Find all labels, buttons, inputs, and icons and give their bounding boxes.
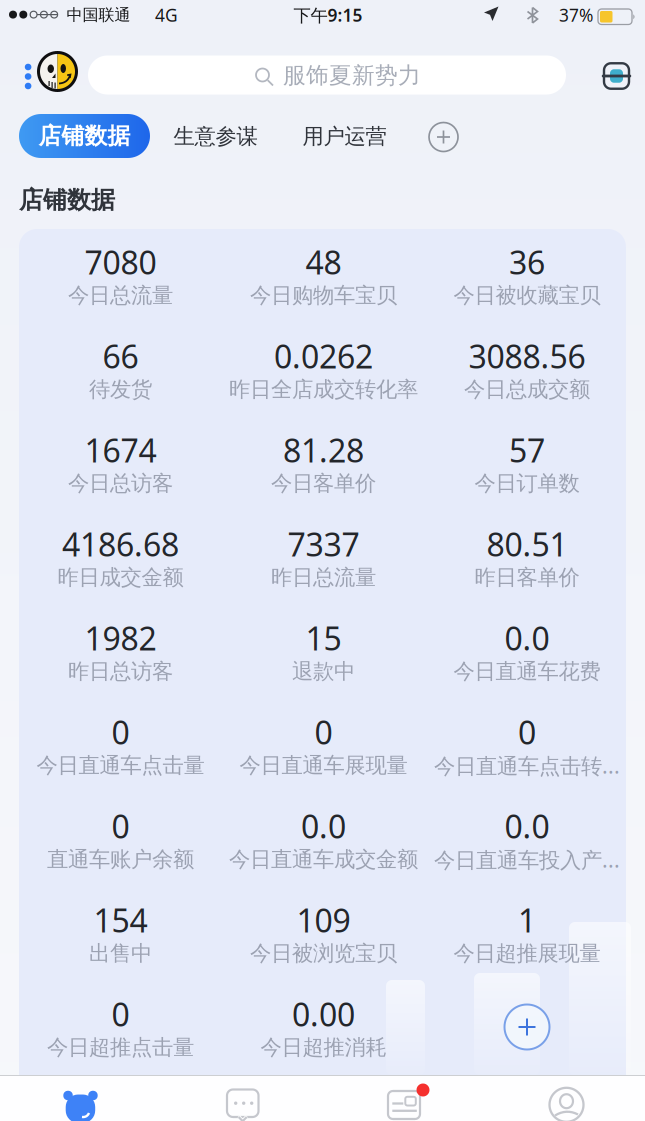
staticText: 0 bbox=[111, 805, 129, 847]
staticText: 店铺数据 bbox=[19, 185, 115, 215]
staticText: 待发货 bbox=[89, 376, 152, 403]
staticText: 66 bbox=[102, 335, 138, 377]
button[interactable]: 店铺数据 bbox=[19, 114, 150, 158]
staticText: 今日直通车点击量 bbox=[36, 752, 204, 779]
staticText: 今日直通车点击转... bbox=[434, 751, 620, 780]
button[interactable]: 我的 bbox=[534, 1078, 598, 1121]
staticText: 81.28 bbox=[283, 429, 364, 471]
staticText: 4186.68 bbox=[62, 523, 179, 565]
staticText: 48 bbox=[305, 241, 341, 283]
staticText: 0 bbox=[111, 993, 129, 1035]
button[interactable]: 首页 bbox=[48, 1078, 112, 1121]
staticText: 37% bbox=[559, 3, 593, 26]
staticText: 昨日成交金额 bbox=[57, 564, 183, 591]
staticText: 今日购物车宝贝 bbox=[250, 282, 397, 309]
staticText: 今日超推展现量 bbox=[453, 940, 600, 967]
button[interactable]: 添加数据 bbox=[503, 1003, 551, 1051]
staticText: 今日直通车展现量 bbox=[239, 752, 407, 779]
staticText: 0.0 bbox=[504, 805, 549, 847]
staticText: 0.0 bbox=[301, 805, 346, 847]
staticText: 昨日全店成交转化率 bbox=[229, 376, 418, 403]
staticText: 店铺数据 bbox=[38, 122, 130, 150]
staticText: 今日超推消耗 bbox=[260, 1034, 386, 1061]
staticText: 今日订单数 bbox=[474, 470, 579, 497]
staticText: 今日被收藏宝贝 bbox=[453, 282, 600, 309]
staticText: 4G bbox=[155, 3, 178, 26]
staticText: 下午9:15 bbox=[293, 3, 362, 26]
button[interactable]: 账号 bbox=[37, 51, 78, 92]
staticText: 今日直通车花费 bbox=[453, 658, 600, 685]
staticText: 今日被浏览宝贝 bbox=[250, 940, 397, 967]
staticText: 7080 bbox=[84, 241, 156, 283]
staticText: 生意参谋 bbox=[173, 123, 257, 150]
staticText: 0 bbox=[518, 711, 536, 753]
staticText: 今日总成交额 bbox=[464, 376, 590, 403]
button[interactable]: 生意参谋 bbox=[173, 123, 257, 150]
staticText: 用户运营 bbox=[302, 123, 386, 150]
staticText: 今日直通车成交金额 bbox=[229, 846, 418, 873]
staticText: 直通车账户余额 bbox=[47, 846, 194, 873]
staticText: 109 bbox=[296, 899, 350, 941]
staticText: 15 bbox=[305, 617, 341, 659]
button[interactable]: 用户运营 bbox=[302, 123, 386, 150]
staticText: 0 bbox=[314, 711, 332, 753]
staticText: 1982 bbox=[84, 617, 156, 659]
staticText: 今日超推点击量 bbox=[47, 1034, 194, 1061]
staticText: 今日总流量 bbox=[68, 282, 173, 309]
staticText: 3088.56 bbox=[468, 335, 585, 377]
button[interactable]: 资讯 bbox=[372, 1078, 436, 1121]
staticText: 154 bbox=[93, 899, 147, 941]
staticText: 57 bbox=[509, 429, 545, 471]
staticText: 0.00 bbox=[292, 993, 355, 1035]
staticText: 0 bbox=[111, 711, 129, 753]
staticText: 1 bbox=[518, 899, 536, 941]
button[interactable]: 消息 bbox=[210, 1078, 274, 1121]
staticText: 退款中 bbox=[292, 658, 355, 685]
staticText: 80.51 bbox=[486, 523, 567, 565]
staticText: 昨日总访客 bbox=[68, 658, 173, 685]
staticText: 1674 bbox=[84, 429, 156, 471]
staticText: 出售中 bbox=[89, 940, 152, 967]
staticText: 昨日客单价 bbox=[474, 564, 579, 591]
staticText: 36 bbox=[509, 241, 545, 283]
staticText: 昨日总流量 bbox=[271, 564, 376, 591]
staticText: 0.0 bbox=[504, 617, 549, 659]
button[interactable]: 添加 bbox=[425, 119, 461, 155]
staticText: 服饰夏新势力 bbox=[283, 62, 421, 89]
staticText: 今日直通车投入产... bbox=[434, 845, 620, 874]
staticText: 中国联通 bbox=[66, 5, 130, 25]
staticText: 今日总访客 bbox=[68, 470, 173, 497]
staticText: 0.0262 bbox=[274, 335, 373, 377]
button[interactable]: 搜索 bbox=[88, 55, 566, 94]
button[interactable]: 扫一扫 bbox=[596, 56, 636, 96]
staticText: 7337 bbox=[287, 523, 359, 565]
staticText: 今日客单价 bbox=[271, 470, 376, 497]
